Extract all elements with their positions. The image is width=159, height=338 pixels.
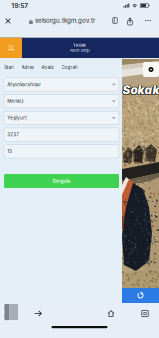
button[interactable]: selsorgu.tkgm.gov.tr [29,13,95,27]
button[interactable]: Share [124,13,135,27]
button[interactable]: Tabs [137,305,153,321]
staticText: Sorgula [52,178,70,184]
button[interactable]: 15 [4,145,119,158]
staticText: TKGM [73,43,86,48]
staticText: Sokak [122,84,159,98]
staticText: selsorgu.tkgm.gov.tr [35,17,95,24]
staticText: Adres [21,65,33,70]
button[interactable]: Bookmarks [103,305,119,321]
staticText: Sokak [123,82,159,97]
button[interactable]: Screenshot preview [4,303,18,320]
staticText: Merkez [7,98,24,104]
button[interactable]: Merkez [4,94,119,108]
staticText: İdari [4,65,13,70]
button[interactable]: 3237 [4,128,119,141]
button[interactable]: Locate me [143,62,159,77]
button[interactable]: Sorgula [4,174,119,188]
staticText: Yeşilyurt [7,115,26,121]
button[interactable]: İdari [0,62,17,73]
button[interactable]: Coğrafi [57,62,81,73]
staticText: Afyonkarahisar [7,82,41,87]
button[interactable]: Forward [30,305,46,321]
button[interactable]: Reader view [109,13,120,27]
staticText: 15 [7,149,12,154]
staticText: Sokak [122,83,159,97]
staticText: Analiz [41,65,53,70]
button[interactable]: Refresh [122,288,159,303]
staticText: Sokak [122,83,159,98]
button[interactable]: Close tab [1,14,14,28]
staticText: Sokak [123,83,159,98]
button[interactable]: More [142,13,154,27]
staticText: Sokak [122,82,159,97]
staticText: 3237 [7,132,19,137]
button[interactable]: Yeşilyurt [4,111,119,125]
staticText: 19:57 [11,2,28,10]
button[interactable]: Afyonkarahisar [4,78,119,91]
button[interactable]: Adres [17,62,37,73]
staticText: Sokak [122,82,159,97]
staticText: Coğrafi [61,65,77,70]
staticText: Sokak [122,83,159,97]
button[interactable]: Analiz [37,62,57,73]
staticText: Sokak [123,83,159,97]
staticText: Parsel Sorgu [69,48,89,53]
